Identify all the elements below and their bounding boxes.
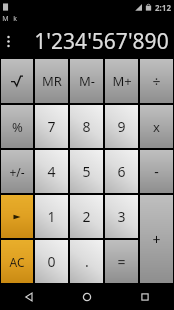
staticText: M+ — [112, 72, 132, 90]
staticText: M- — [79, 72, 95, 90]
button[interactable]: M- — [70, 59, 103, 103]
staticText: 4 — [47, 162, 56, 181]
button[interactable]: M+ — [105, 59, 138, 103]
staticText: M — [2, 14, 9, 24]
button[interactable]: 3 — [105, 195, 138, 238]
button[interactable]: 2 — [70, 195, 103, 238]
button[interactable]: 5 — [70, 150, 103, 193]
staticText: k — [13, 14, 17, 24]
staticText: 6 — [117, 162, 126, 181]
button[interactable]: ÷ — [140, 59, 173, 103]
button[interactable]: Back — [0, 284, 58, 310]
staticText: + — [152, 230, 161, 249]
staticText: % — [12, 118, 23, 136]
staticText: . — [85, 252, 89, 271]
button[interactable]: = — [105, 240, 138, 283]
staticText: +/- — [9, 164, 25, 180]
staticText: = — [117, 252, 126, 271]
button[interactable]: Home — [58, 284, 116, 310]
staticText: 7 — [47, 117, 56, 136]
button[interactable]: + — [140, 195, 173, 283]
button[interactable]: 0 — [35, 240, 68, 283]
button[interactable]: 7 — [35, 105, 68, 148]
button[interactable]: - — [140, 150, 173, 193]
staticText: 8 — [82, 117, 91, 136]
staticText: 2:12 — [155, 2, 171, 13]
staticText: 5 — [82, 162, 91, 181]
staticText: 0 — [47, 252, 56, 271]
staticText: 1'234'567'890 — [34, 27, 169, 56]
staticText: AC — [9, 254, 25, 270]
staticText: MR — [42, 72, 62, 90]
button[interactable]: . — [70, 240, 103, 283]
button[interactable]: More options — [0, 24, 16, 58]
staticText: x — [153, 118, 160, 136]
button[interactable]: Recent apps — [116, 284, 174, 310]
button[interactable]: +/- — [1, 150, 33, 193]
button[interactable]: x — [140, 105, 173, 148]
button[interactable]: AC — [1, 240, 33, 283]
button[interactable]: Square root — [1, 59, 33, 103]
staticText: 2 — [82, 207, 91, 226]
button[interactable]: 9 — [105, 105, 138, 148]
staticText: ÷ — [152, 72, 161, 91]
button[interactable]: 4 — [35, 150, 68, 193]
button[interactable]: 1 — [35, 195, 68, 238]
button[interactable]: % — [1, 105, 33, 148]
staticText: 9 — [117, 117, 126, 136]
staticText: - — [154, 162, 159, 181]
button[interactable]: 8 — [70, 105, 103, 148]
button[interactable]: Backspace — [1, 195, 33, 238]
button[interactable]: 6 — [105, 150, 138, 193]
button[interactable]: MR — [35, 59, 68, 103]
staticText: 1 — [47, 207, 56, 226]
staticText: 3 — [117, 207, 126, 226]
